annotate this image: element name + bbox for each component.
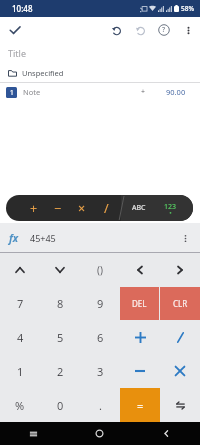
- button[interactable]: 5: [40, 320, 80, 354]
- button[interactable]: ×: [70, 196, 94, 220]
- button[interactable]: 0: [40, 388, 80, 422]
- button[interactable]: %: [0, 388, 40, 422]
- staticText: 0: [57, 398, 64, 413]
- staticText: +: [141, 87, 146, 97]
- staticText: 45+45: [30, 232, 56, 244]
- staticText: Note: [23, 87, 41, 97]
- staticText: .: [99, 398, 102, 413]
- button[interactable]: Help: [152, 18, 176, 42]
- staticText: ?: [162, 25, 166, 35]
- button[interactable]: ABC: [129, 198, 149, 218]
- staticText: 4: [17, 330, 24, 345]
- staticText: 10:48: [12, 3, 33, 14]
- staticText: 6: [97, 330, 104, 345]
- staticText: 1: [10, 88, 14, 97]
- button[interactable]: Plus: [120, 320, 160, 354]
- button[interactable]: Up: [0, 253, 40, 287]
- button[interactable]: Back: [133, 422, 200, 445]
- button[interactable]: 1: [0, 83, 200, 101]
- staticText: 123: [164, 202, 177, 212]
- button[interactable]: Undo: [104, 18, 128, 42]
- button[interactable]: Parentheses: [80, 253, 120, 287]
- staticText: 2: [57, 364, 64, 379]
- staticText: %: [15, 398, 25, 413]
- staticText: /: [104, 200, 109, 217]
- button[interactable]: More options: [176, 18, 200, 42]
- button[interactable]: Save: [4, 19, 26, 41]
- button[interactable]: 3: [80, 354, 120, 388]
- staticText: fx: [9, 231, 19, 245]
- button[interactable]: 7: [0, 287, 40, 320]
- button[interactable]: .: [80, 388, 120, 422]
- button[interactable]: 123: [162, 202, 179, 214]
- staticText: (): [97, 263, 103, 277]
- button[interactable]: Left: [120, 253, 160, 287]
- staticText: +: [30, 200, 38, 217]
- button[interactable]: CLR: [160, 287, 200, 320]
- staticText: Unspecified: [22, 68, 64, 78]
- button[interactable]: Multiply: [160, 354, 200, 388]
- button[interactable]: 9: [80, 287, 120, 320]
- button[interactable]: 8: [40, 287, 80, 320]
- button[interactable]: −: [46, 196, 70, 220]
- button[interactable]: Home: [66, 422, 133, 445]
- staticText: 9: [97, 296, 104, 311]
- staticText: =: [137, 398, 144, 413]
- staticText: ×: [78, 200, 86, 217]
- button[interactable]: Right: [160, 253, 200, 287]
- staticText: ABC: [132, 203, 146, 213]
- button[interactable]: Title: [0, 43, 200, 63]
- button[interactable]: Redo: [128, 18, 152, 42]
- staticText: CLR: [173, 298, 188, 309]
- button[interactable]: Recents: [0, 422, 66, 445]
- button[interactable]: Down: [40, 253, 80, 287]
- staticText: −: [54, 200, 62, 217]
- button[interactable]: Unspecified: [0, 63, 200, 82]
- staticText: 7: [17, 296, 24, 311]
- button[interactable]: Swap: [160, 388, 200, 422]
- button[interactable]: Minus: [120, 354, 160, 388]
- staticText: 5: [57, 330, 64, 345]
- button[interactable]: Divide: [160, 320, 200, 354]
- button[interactable]: 2: [40, 354, 80, 388]
- staticText: 1: [17, 364, 24, 379]
- staticText: 3: [97, 364, 104, 379]
- button[interactable]: /: [94, 196, 118, 220]
- staticText: 90.00: [166, 87, 186, 97]
- button[interactable]: +: [22, 196, 46, 220]
- button[interactable]: 6: [80, 320, 120, 354]
- button[interactable]: 4: [0, 320, 40, 354]
- staticText: DEL: [132, 298, 147, 309]
- staticText: Title: [8, 47, 26, 59]
- staticText: 58%: [181, 4, 194, 13]
- button[interactable]: Formula options: [177, 230, 193, 246]
- button[interactable]: DEL: [120, 287, 159, 320]
- button[interactable]: 1: [0, 354, 40, 388]
- staticText: 8: [57, 296, 64, 311]
- button[interactable]: Equals: [120, 388, 160, 422]
